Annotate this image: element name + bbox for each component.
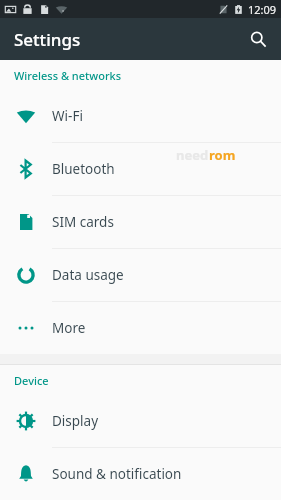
staticText: More bbox=[52, 319, 86, 337]
button[interactable]: Search bbox=[241, 22, 275, 56]
button[interactable]: Data usage bbox=[0, 249, 281, 302]
staticText: Wi-Fi bbox=[52, 107, 83, 125]
staticText: Display bbox=[52, 412, 99, 430]
button[interactable]: Display bbox=[0, 395, 281, 448]
staticText: Bluetooth bbox=[52, 160, 115, 178]
staticText: Sound & notification bbox=[52, 465, 182, 483]
staticText: Device bbox=[14, 373, 49, 388]
button[interactable]: More bbox=[0, 302, 281, 354]
staticText: Settings bbox=[14, 28, 81, 51]
staticText: 12:09 bbox=[248, 2, 277, 17]
staticText: need bbox=[176, 146, 209, 164]
staticText: Wireless & networks bbox=[14, 68, 122, 83]
button[interactable]: SIM cards bbox=[0, 196, 281, 249]
staticText: rom bbox=[209, 146, 236, 164]
button[interactable]: Wi-Fi bbox=[0, 90, 281, 143]
button[interactable]: Bluetooth bbox=[0, 143, 281, 196]
button[interactable]: Sound & notification bbox=[0, 448, 281, 500]
staticText: SIM cards bbox=[52, 213, 114, 231]
staticText: Data usage bbox=[52, 266, 124, 284]
